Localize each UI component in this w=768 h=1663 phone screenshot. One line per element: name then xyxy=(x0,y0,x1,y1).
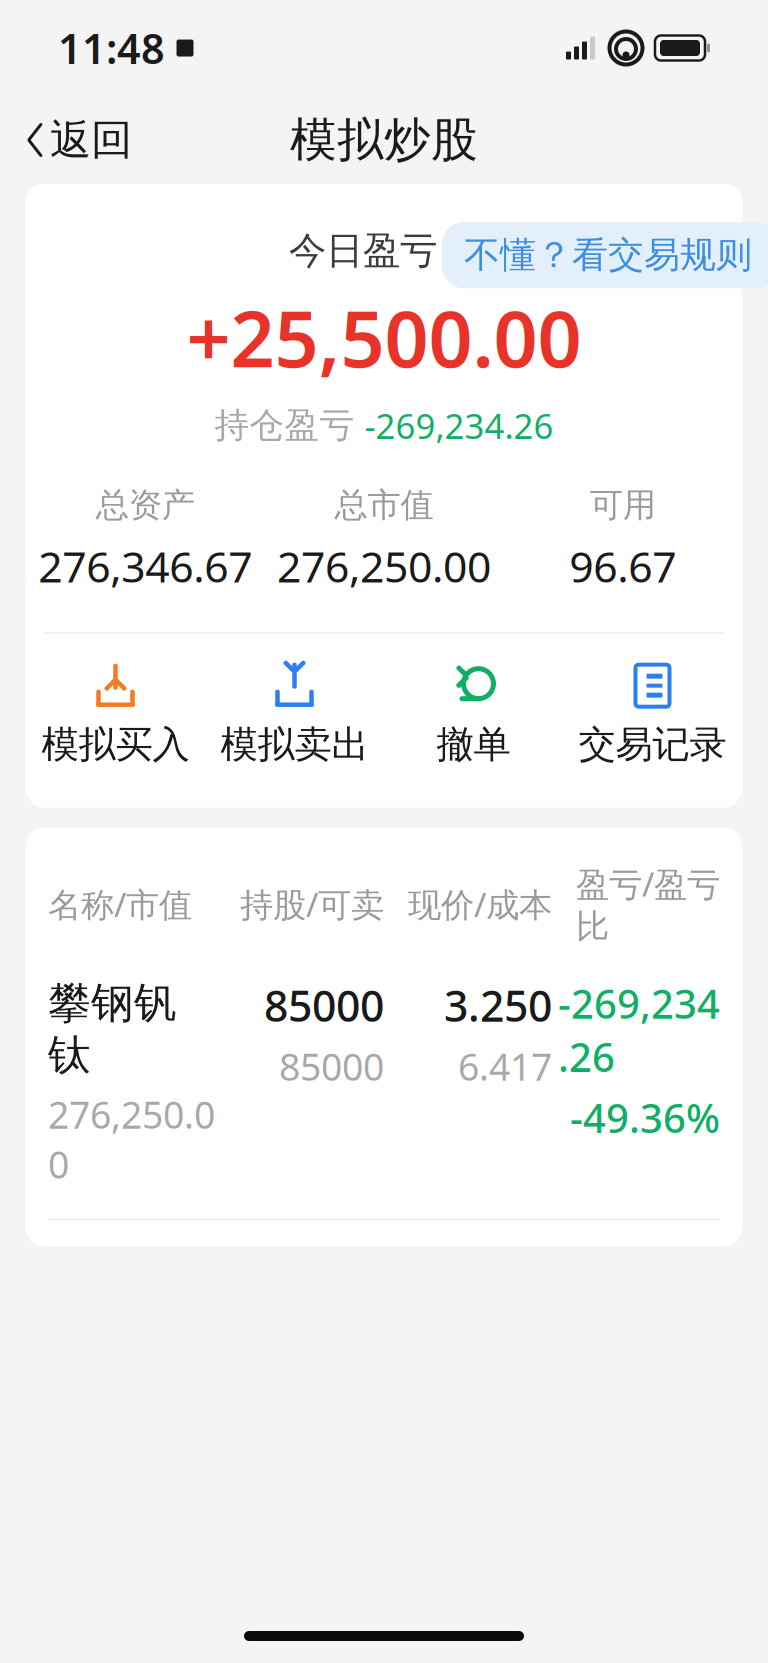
staticText: 276,250.00 xyxy=(48,1090,215,1189)
staticText: 现价/成本 xyxy=(408,882,552,926)
staticText: 持股/可卖 xyxy=(240,882,384,926)
staticText: 今日盈亏 xyxy=(289,228,437,274)
button[interactable]: 返回 xyxy=(16,105,142,175)
button[interactable]: 模拟买入 xyxy=(26,656,205,774)
staticText: 持仓盈亏 xyxy=(214,404,354,447)
button[interactable]: 不懂？看交易规则 xyxy=(442,222,768,288)
staticText: -269,234.26 xyxy=(364,402,553,448)
staticText: 名称/市值 xyxy=(48,882,192,926)
staticText: 85000 xyxy=(279,1041,384,1091)
staticText: 11:48 xyxy=(58,21,165,75)
staticText: 3.250 xyxy=(444,977,552,1033)
staticText: 盈亏/盈亏比 xyxy=(576,861,720,947)
staticText: 276,346.67 xyxy=(38,537,252,594)
staticText: 不懂？看交易规则 xyxy=(464,233,752,277)
staticText: -49.36% xyxy=(570,1091,720,1144)
button[interactable]: 攀钢钒钛 xyxy=(26,947,742,1189)
button[interactable]: 撤单 xyxy=(384,656,563,774)
staticText: 96.67 xyxy=(569,537,676,594)
staticText: 模拟炒股 xyxy=(290,111,478,169)
staticText: 总市值 xyxy=(334,485,433,525)
staticText: 攀钢钒钛 xyxy=(48,977,177,1082)
staticText: 总资产 xyxy=(96,485,195,525)
staticText: +25,500.00 xyxy=(186,286,581,389)
staticText: 撤单 xyxy=(436,722,510,768)
staticText: -269,234.26 xyxy=(558,977,720,1083)
staticText: 6.417 xyxy=(458,1041,552,1091)
staticText: 276,250.00 xyxy=(277,537,491,594)
button[interactable]: 模拟卖出 xyxy=(205,656,384,774)
staticText: 模拟买入 xyxy=(41,722,189,768)
staticText: 模拟卖出 xyxy=(220,722,368,768)
staticText: 85000 xyxy=(264,977,384,1033)
staticText: 返回 xyxy=(50,115,132,165)
button[interactable]: 交易记录 xyxy=(563,656,742,774)
staticText: 交易记录 xyxy=(578,722,726,768)
staticText: 可用 xyxy=(590,485,656,525)
